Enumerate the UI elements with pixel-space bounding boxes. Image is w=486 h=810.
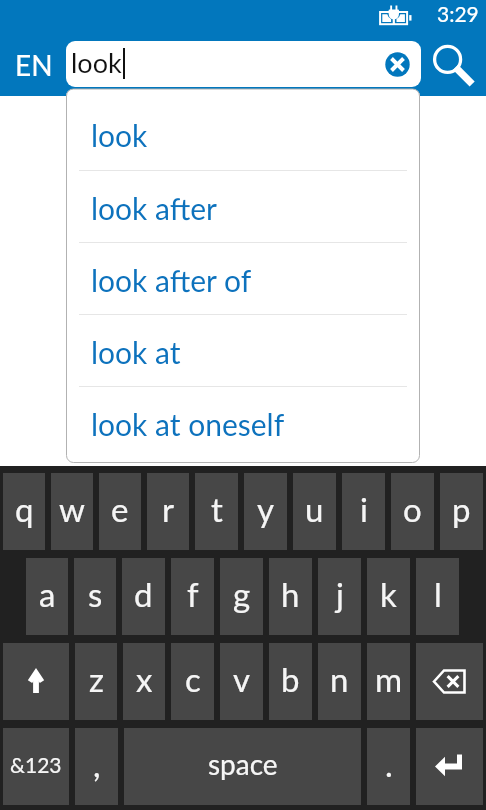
button[interactable]: look bbox=[66, 96, 420, 170]
button[interactable]: f bbox=[171, 558, 214, 635]
staticText: . bbox=[385, 744, 393, 784]
button[interactable]: . bbox=[367, 728, 410, 805]
button[interactable]: x bbox=[123, 643, 165, 720]
button[interactable]: m bbox=[367, 643, 410, 720]
staticText: e bbox=[111, 489, 129, 529]
staticText: look after bbox=[91, 190, 217, 226]
button[interactable]: r bbox=[147, 473, 189, 550]
button[interactable]: EN bbox=[9, 42, 59, 88]
staticText: w bbox=[59, 489, 85, 529]
button[interactable]: s bbox=[74, 558, 116, 635]
button[interactable]: space bbox=[124, 728, 361, 805]
staticText: , bbox=[93, 744, 101, 784]
button[interactable]: e bbox=[99, 473, 141, 550]
button[interactable]: u bbox=[293, 473, 336, 550]
button[interactable]: g bbox=[220, 558, 263, 635]
staticText: look at oneself bbox=[91, 406, 285, 442]
staticText: d bbox=[134, 574, 153, 614]
button[interactable]: t bbox=[195, 473, 238, 550]
staticText: l bbox=[434, 574, 442, 614]
button[interactable]: q bbox=[3, 473, 45, 550]
button[interactable]: p bbox=[440, 473, 483, 550]
other: Battery charging bbox=[376, 4, 412, 28]
staticText: look bbox=[91, 117, 148, 153]
staticText: o bbox=[403, 489, 422, 529]
staticText: c bbox=[185, 659, 201, 699]
staticText: n bbox=[330, 659, 349, 699]
staticText: a bbox=[39, 574, 56, 614]
staticText: v bbox=[233, 659, 251, 699]
button[interactable]: z bbox=[75, 643, 117, 720]
button[interactable]: j bbox=[318, 558, 361, 635]
button[interactable]: Backspace bbox=[416, 643, 483, 720]
staticText: y bbox=[257, 489, 275, 529]
staticText: EN bbox=[15, 48, 53, 82]
staticText: f bbox=[187, 574, 199, 614]
staticText: m bbox=[375, 659, 403, 699]
button[interactable]: look after of bbox=[66, 242, 420, 314]
staticText: u bbox=[305, 489, 324, 529]
button[interactable]: look at oneself bbox=[66, 386, 420, 458]
button[interactable]: b bbox=[269, 643, 312, 720]
button[interactable]: Enter bbox=[416, 728, 483, 805]
button[interactable]: w bbox=[51, 473, 93, 550]
staticText: j bbox=[336, 574, 344, 614]
button[interactable]: k bbox=[367, 558, 410, 635]
staticText: q bbox=[15, 489, 34, 529]
staticText: b bbox=[281, 659, 300, 699]
staticText: z bbox=[89, 659, 104, 699]
staticText: g bbox=[233, 574, 251, 614]
button[interactable]: y bbox=[244, 473, 287, 550]
button[interactable]: Search bbox=[424, 34, 476, 86]
staticText: look bbox=[71, 46, 122, 78]
button[interactable]: d bbox=[122, 558, 165, 635]
button[interactable]: c bbox=[171, 643, 214, 720]
button[interactable]: look after bbox=[66, 170, 420, 242]
button[interactable]: l bbox=[416, 558, 459, 635]
staticText: p bbox=[452, 489, 471, 529]
staticText: i bbox=[360, 489, 368, 529]
button[interactable]: n bbox=[318, 643, 361, 720]
staticText: r bbox=[162, 489, 175, 529]
button[interactable]: look at bbox=[66, 314, 420, 386]
button[interactable]: a bbox=[26, 558, 68, 635]
button[interactable]: i bbox=[342, 473, 385, 550]
button[interactable]: o bbox=[391, 473, 434, 550]
button[interactable]: h bbox=[269, 558, 312, 635]
staticText: t bbox=[211, 489, 223, 529]
button[interactable]: &123 bbox=[3, 728, 69, 805]
button[interactable]: v bbox=[220, 643, 263, 720]
staticText: 3:29 bbox=[437, 1, 479, 26]
staticText: k bbox=[380, 574, 397, 614]
staticText: h bbox=[281, 574, 300, 614]
staticText: look after of bbox=[91, 262, 252, 298]
staticText: space bbox=[208, 747, 278, 781]
button[interactable]: Shift bbox=[3, 643, 69, 720]
button[interactable]: Clear text bbox=[385, 52, 410, 77]
staticText: look at bbox=[91, 334, 181, 370]
staticText: &123 bbox=[10, 752, 62, 777]
staticText: x bbox=[136, 659, 153, 699]
button[interactable]: look bbox=[66, 41, 421, 87]
button[interactable]: , bbox=[75, 728, 118, 805]
staticText: s bbox=[88, 574, 103, 614]
